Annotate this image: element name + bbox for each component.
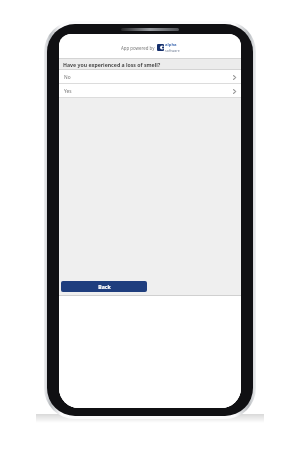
button[interactable]: Back	[61, 281, 147, 292]
other: Select No	[233, 75, 236, 80]
staticText: Yes	[64, 88, 72, 95]
button[interactable]: No	[59, 70, 241, 84]
other: Select Yes	[233, 89, 236, 94]
staticText: alpha	[165, 42, 177, 48]
staticText: software	[165, 48, 180, 53]
staticText: App powered by	[121, 45, 155, 51]
staticText: Have you experienced a loss of smell?	[63, 61, 161, 68]
button[interactable]: Yes	[59, 84, 241, 98]
staticText: Back	[98, 283, 111, 290]
staticText: No	[64, 74, 71, 81]
